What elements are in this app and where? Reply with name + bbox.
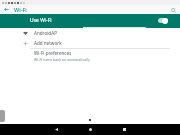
button[interactable]: Home xyxy=(79,124,101,135)
button[interactable]: Back xyxy=(2,5,11,14)
staticText: Wi-Fi xyxy=(14,6,27,13)
button[interactable]: Search xyxy=(169,6,177,14)
button[interactable]: AndroidAP xyxy=(0,28,180,38)
staticText: Wi‑Fi turns back on automatically xyxy=(34,57,90,62)
staticText: Use Wi-Fi xyxy=(30,17,52,24)
button[interactable]: Recent apps xyxy=(113,124,135,135)
staticText: AndroidAP xyxy=(34,30,57,36)
button[interactable]: Use Wi-Fi toggle xyxy=(157,17,168,24)
button[interactable]: Add network xyxy=(0,38,180,48)
staticText: Add network xyxy=(34,40,62,46)
button[interactable]: Use Wi-Fi xyxy=(0,14,180,27)
staticText: Wi‑Fi preferences xyxy=(34,50,72,56)
button[interactable]: Back xyxy=(45,124,67,135)
button[interactable]: Open drawer xyxy=(0,110,5,122)
button[interactable]: Wi‑Fi preferences xyxy=(0,49,180,62)
